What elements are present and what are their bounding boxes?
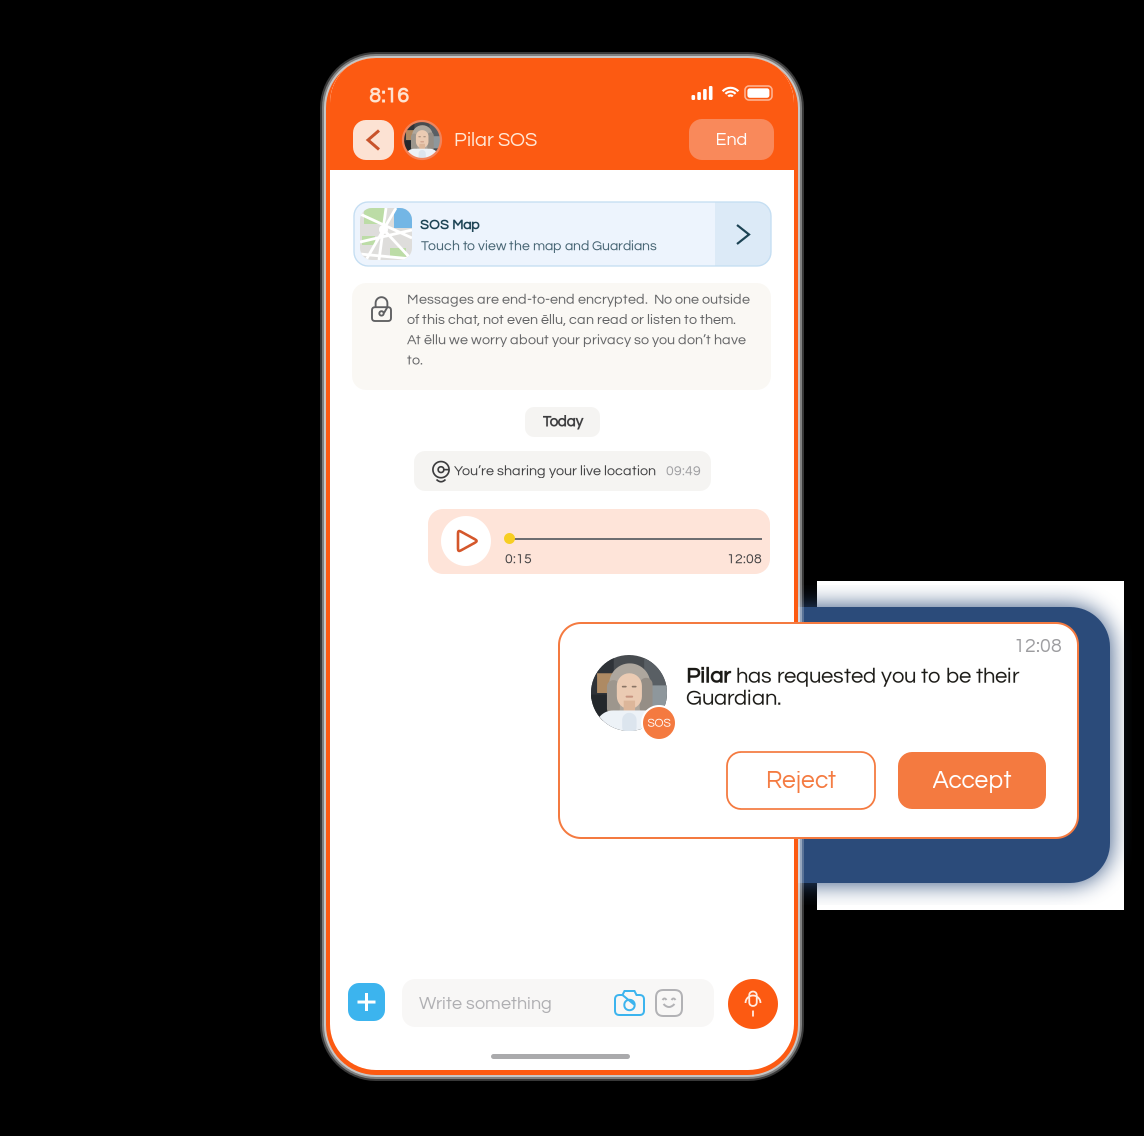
staticText: Reject [766,768,836,793]
button[interactable]: Play voice message [441,516,491,566]
staticText: Pilar SOS [454,130,537,150]
staticText: 0:15 [505,552,532,566]
staticText: Accept [932,768,1011,793]
button[interactable]: Stickers [656,990,682,1016]
button[interactable]: Back [353,120,394,160]
staticText: Write something [419,994,552,1013]
staticText: 8:16 [369,85,409,107]
button[interactable]: Camera [615,991,644,1015]
staticText: 12:08 [1014,636,1062,656]
button[interactable]: Reject [727,752,875,809]
button[interactable]: End [689,119,774,160]
staticText: Pilar has requested you to be their Guar… [686,665,1020,709]
staticText: SOS Map [420,218,479,232]
staticText: 09:49 [666,464,701,478]
button[interactable]: Record voice message [728,979,778,1029]
staticText: 12:08 [727,552,762,566]
button[interactable]: Add attachment [348,983,385,1021]
button[interactable]: SOS Map [354,202,771,266]
staticText: SOS [647,717,670,729]
staticText: You’re sharing your live location [454,464,656,478]
staticText: Messages are end-to-end encrypted. No on… [407,292,750,367]
staticText: Touch to view the map and Guardians [421,239,657,253]
staticText: Today [542,414,582,430]
staticText: End [715,130,747,149]
button[interactable]: Accept [898,752,1046,809]
